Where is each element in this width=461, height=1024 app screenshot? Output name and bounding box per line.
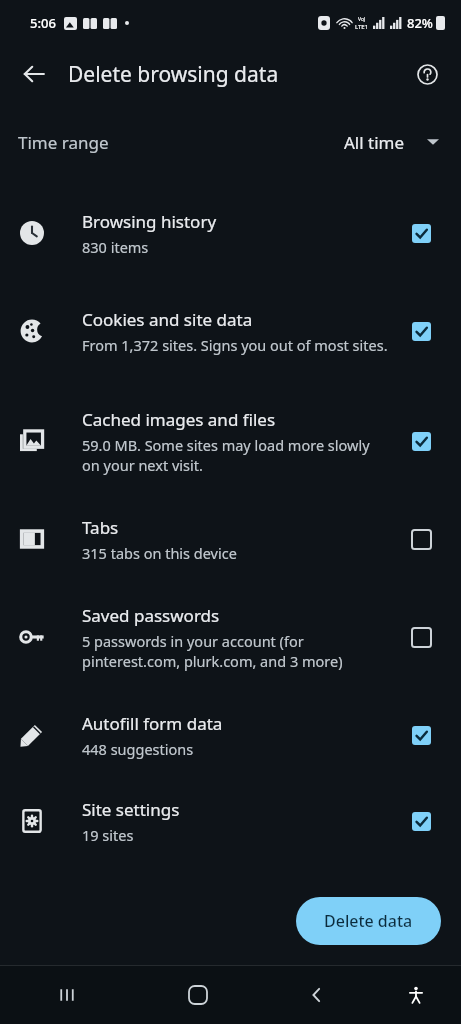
button[interactable]: Cookies and site data: [0, 276, 461, 386]
staticText: 82%: [407, 14, 433, 32]
staticText: Browsing history: [82, 210, 217, 233]
button[interactable]: Checked: [403, 423, 439, 459]
staticText: Cookies and site data: [82, 308, 253, 331]
button[interactable]: Back: [262, 966, 371, 1024]
button[interactable]: Tabs: [0, 496, 461, 582]
button[interactable]: Saved passwords: [0, 582, 461, 692]
staticText: VoJ: [358, 16, 366, 23]
button[interactable]: Checked: [403, 803, 439, 839]
staticText: Saved passwords: [82, 604, 220, 627]
staticText: 448 suggestions: [82, 739, 194, 759]
button[interactable]: Autofill form data: [0, 692, 461, 778]
staticText: From 1,372 sites. Signs you out of most …: [82, 335, 388, 355]
staticText: Autofill form data: [82, 712, 223, 735]
staticText: 59.0 MB. Some sites may load more slowly…: [82, 435, 389, 475]
staticText: Site settings: [82, 798, 180, 821]
staticText: 5 passwords in your account (for pintere…: [82, 631, 389, 671]
button[interactable]: Checked: [403, 313, 439, 349]
button[interactable]: Unchecked: [403, 521, 439, 557]
staticText: 830 items: [82, 237, 149, 257]
staticText: Time range: [18, 131, 109, 154]
button[interactable]: Browsing history: [0, 190, 461, 276]
staticText: LTE1: [355, 23, 369, 31]
button[interactable]: Checked: [403, 717, 439, 753]
button[interactable]: Site settings: [0, 778, 461, 864]
button[interactable]: Recents: [0, 966, 134, 1024]
button[interactable]: Help: [405, 52, 449, 96]
button[interactable]: Checked: [403, 215, 439, 251]
button[interactable]: Home: [134, 966, 262, 1024]
staticText: Tabs: [82, 516, 119, 539]
button[interactable]: Back: [12, 52, 56, 96]
staticText: 315 tabs on this device: [82, 543, 237, 563]
button[interactable]: Time range: [0, 116, 461, 168]
staticText: Cached images and files: [82, 408, 276, 431]
button[interactable]: Delete data: [296, 897, 441, 945]
button[interactable]: Accessibility: [371, 966, 461, 1024]
button[interactable]: Unchecked: [403, 619, 439, 655]
button[interactable]: Cached images and files: [0, 386, 461, 496]
staticText: All time: [344, 131, 405, 154]
staticText: Delete data: [324, 910, 413, 932]
staticText: 19 sites: [82, 825, 134, 845]
staticText: Delete browsing data: [68, 60, 279, 89]
staticText: 5:06: [30, 14, 56, 32]
